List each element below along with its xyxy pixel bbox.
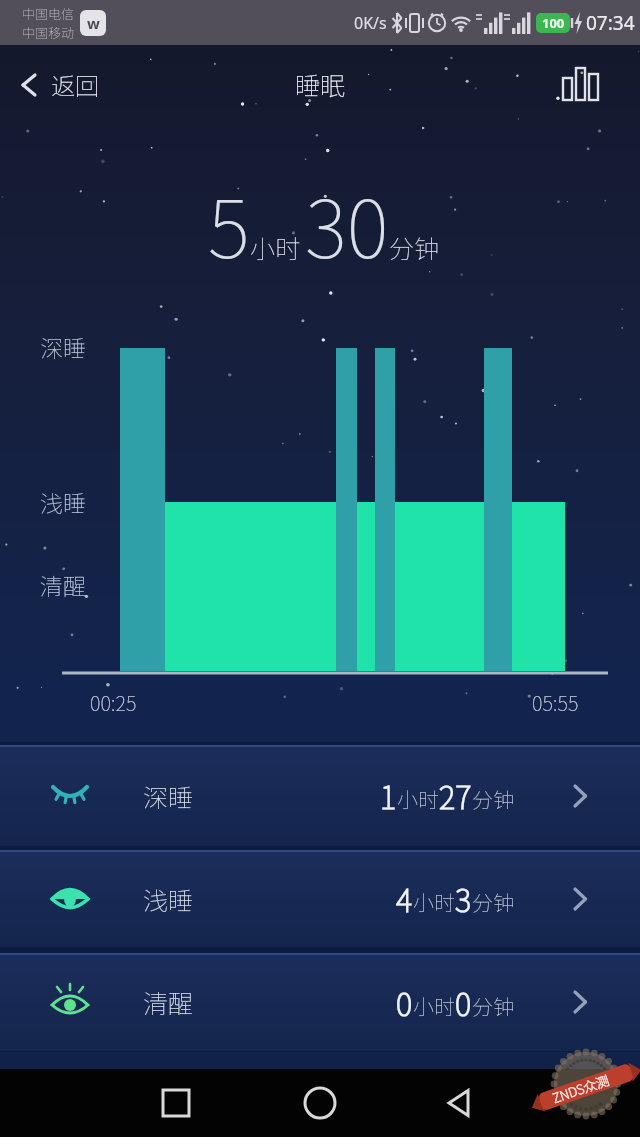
staticText: 0 xyxy=(396,980,413,1025)
staticText: 浅睡 xyxy=(143,881,194,917)
staticText: 小时 xyxy=(397,784,439,814)
staticText: 深睡 xyxy=(143,778,194,814)
staticText: 小时 xyxy=(250,229,301,265)
staticText: 0K/s xyxy=(354,12,387,34)
button[interactable] xyxy=(161,1088,191,1118)
staticText: 睡眠 xyxy=(295,66,346,102)
staticText: 分钟 xyxy=(472,784,514,814)
staticText: 中国移动 xyxy=(22,23,75,42)
staticText: 清醒 xyxy=(40,568,86,601)
staticText: 00:25 xyxy=(90,688,137,717)
button[interactable]: 返回 xyxy=(18,67,99,102)
button[interactable]: 浅睡 xyxy=(0,850,640,947)
staticText: 深睡 xyxy=(40,330,86,363)
staticText: 清醒 xyxy=(143,984,194,1020)
button[interactable] xyxy=(303,1086,337,1120)
staticText: 5 xyxy=(208,165,250,281)
button[interactable] xyxy=(445,1088,475,1118)
staticText: 1 xyxy=(380,773,397,818)
staticText: 分钟 xyxy=(389,229,440,265)
staticText: 3 xyxy=(455,876,472,921)
staticText: 30 xyxy=(305,165,389,281)
button[interactable]: 深睡 xyxy=(0,745,640,846)
staticText: w xyxy=(87,13,100,33)
staticText: 05:55 xyxy=(532,688,579,717)
staticText: ZNDS众测 xyxy=(549,1070,611,1107)
staticText: 中国电信 xyxy=(22,4,75,23)
staticText: 返回 xyxy=(51,67,99,102)
button[interactable] xyxy=(560,62,604,106)
staticText: 小时 xyxy=(413,991,455,1021)
staticText: 4 xyxy=(396,876,413,921)
button[interactable]: 清醒 xyxy=(0,953,640,1051)
staticText: 0 xyxy=(455,980,472,1025)
staticText: 分钟 xyxy=(472,887,514,917)
staticText: 小时 xyxy=(413,887,455,917)
staticText: 07:34 xyxy=(586,10,635,36)
staticText: 分钟 xyxy=(472,991,514,1021)
staticText: 100 xyxy=(542,14,565,32)
staticText: 浅睡 xyxy=(40,485,86,518)
staticText: 27 xyxy=(439,773,472,818)
